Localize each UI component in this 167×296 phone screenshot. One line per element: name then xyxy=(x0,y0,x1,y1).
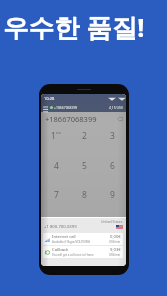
staticText: 8 xyxy=(82,189,87,201)
button[interactable]: 2 xyxy=(70,130,98,142)
button[interactable]: Menu xyxy=(41,103,126,112)
staticText: US$/min xyxy=(109,253,121,257)
button[interactable]: Callback xyxy=(43,246,123,258)
staticText: 4 xyxy=(54,160,59,172)
staticText: 9 xyxy=(110,189,115,201)
button[interactable]: 9 xyxy=(98,189,126,201)
staticText: 0,00€ xyxy=(110,234,121,240)
staticText: +18667068399 xyxy=(54,105,78,110)
other: Menu xyxy=(43,106,48,110)
staticText: 6 xyxy=(110,160,115,172)
button[interactable]: 4 xyxy=(42,160,70,172)
staticText: 10:28 xyxy=(44,96,55,101)
staticText: US$/min xyxy=(109,240,121,244)
button[interactable]: 1 xyxy=(42,130,70,142)
staticText: You will get a call once to Home xyxy=(52,253,94,257)
button[interactable]: Internet call xyxy=(43,233,123,245)
staticText: 우수한 품질! xyxy=(3,10,145,45)
staticText: +18667068399 xyxy=(45,114,97,124)
staticText: Available if Skype/VOLTE/Wifi xyxy=(52,240,91,244)
staticText: Internet call xyxy=(52,234,76,240)
staticText: 2 xyxy=(82,130,87,142)
button[interactable]: 6 xyxy=(98,160,126,172)
staticText: oo xyxy=(56,130,61,135)
staticText: 4,15 US$ xyxy=(109,105,123,110)
button[interactable]: 3 xyxy=(98,130,126,142)
button[interactable]: 7 xyxy=(42,189,70,201)
staticText: 9,03€ xyxy=(110,247,121,253)
staticText: 1 xyxy=(51,130,56,142)
button[interactable]: 8 xyxy=(70,189,98,201)
staticText: United States xyxy=(101,219,123,224)
staticText: 7 xyxy=(54,189,59,201)
button[interactable]: 5 xyxy=(70,160,98,172)
staticText: +1 800-700-0399 xyxy=(44,224,77,230)
other: Backspace xyxy=(117,117,123,121)
staticText: Callback xyxy=(52,247,69,253)
button[interactable]: +1 800-700-0399 xyxy=(41,223,126,231)
staticText: 5 xyxy=(82,160,87,172)
staticText: 3 xyxy=(110,130,115,142)
